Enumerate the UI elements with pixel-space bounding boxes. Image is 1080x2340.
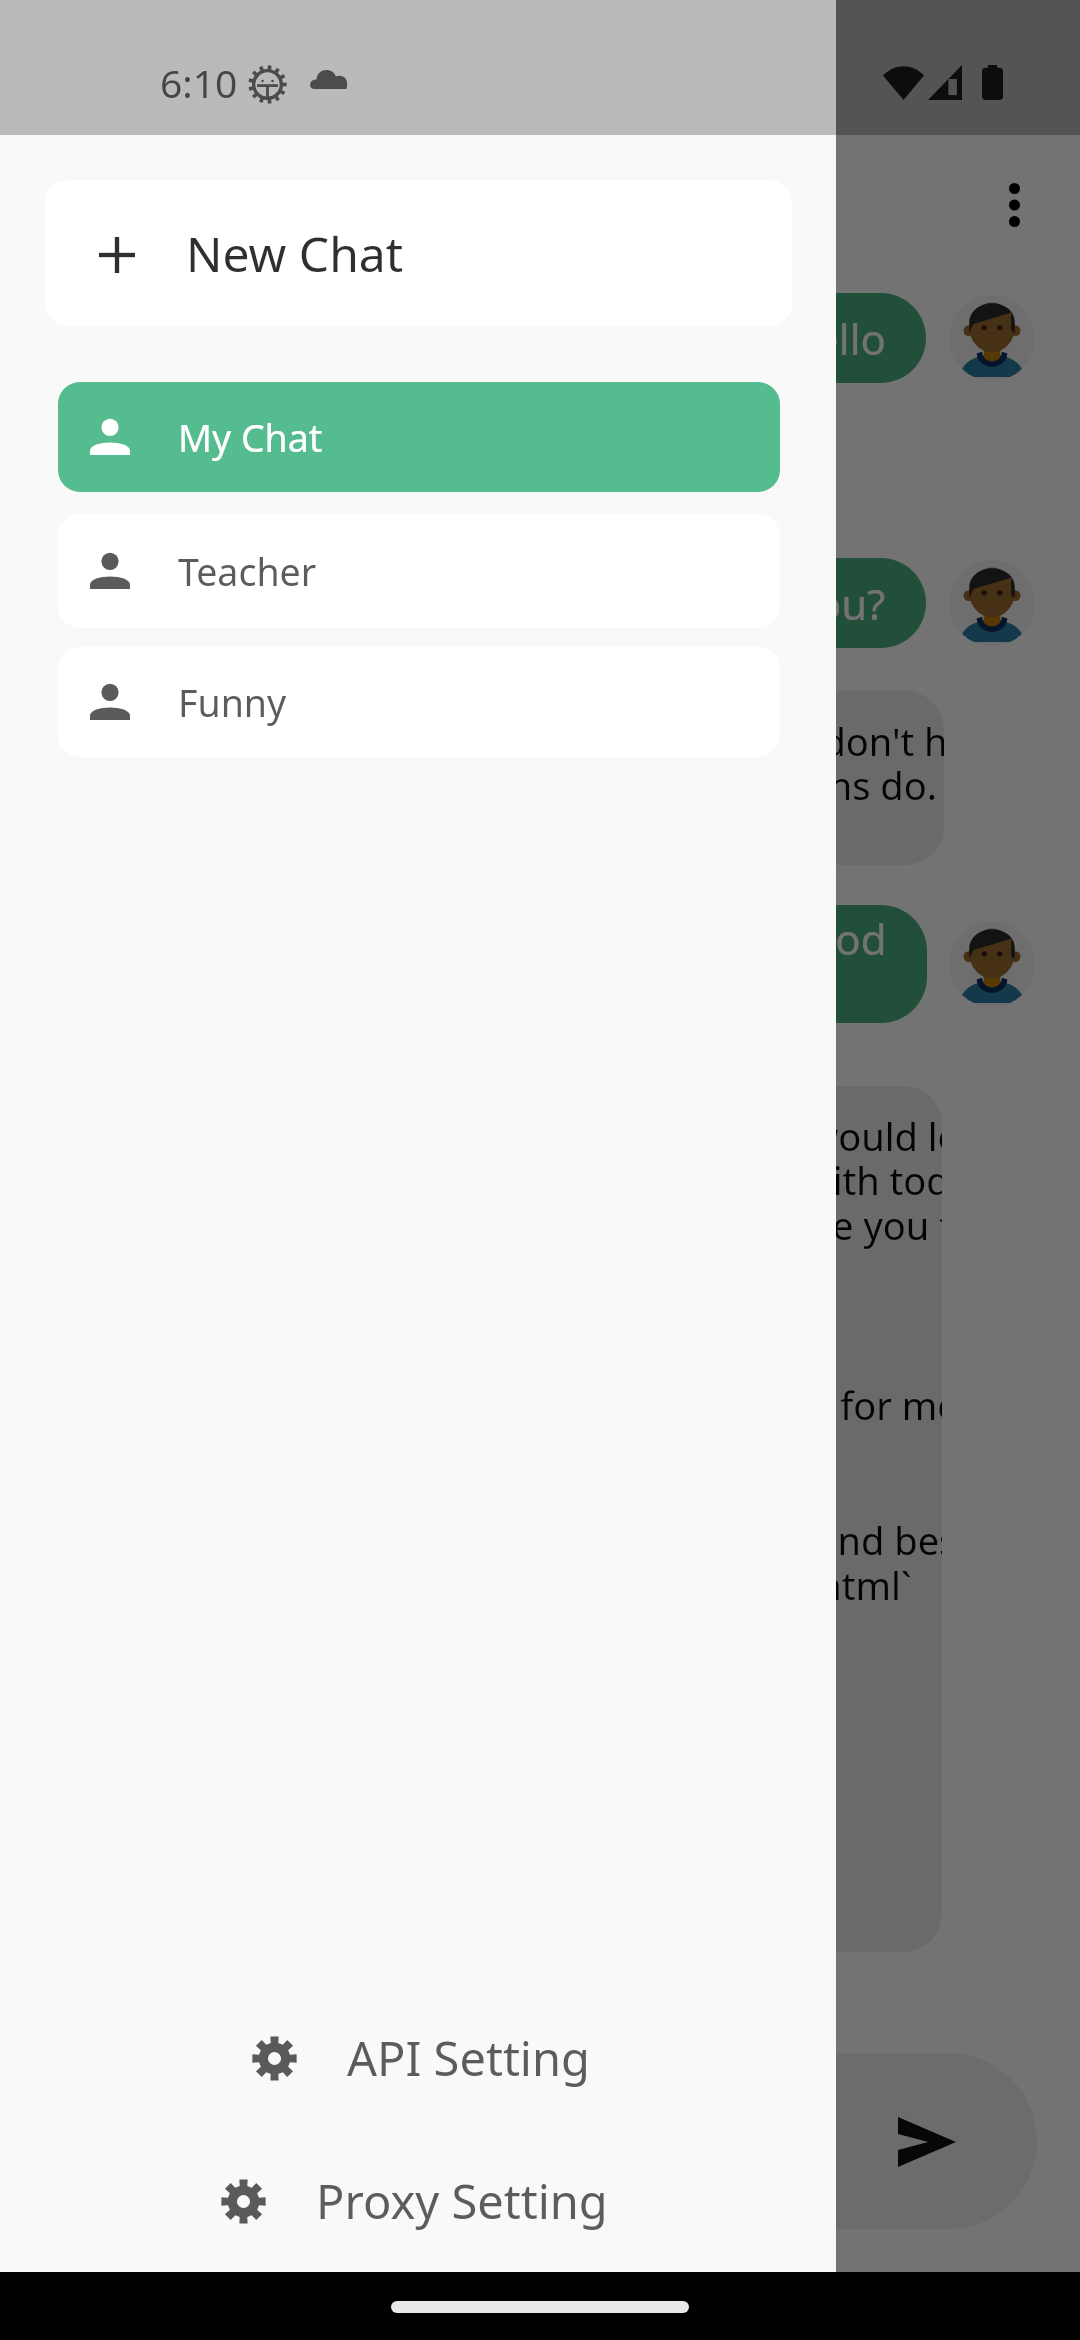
staticText: Funny [178, 677, 287, 728]
staticText: That's good to hear! [656, 910, 887, 1018]
button[interactable]: Teacher [58, 514, 780, 628]
button[interactable]: Funny [58, 647, 780, 757]
staticText: Proxy Setting [316, 2169, 608, 2233]
staticText: I am just a computer program, so I don't… [192, 715, 944, 856]
staticText: New Chat [186, 221, 404, 286]
button[interactable]: API Setting [252, 2018, 590, 2098]
staticText: 6:10 [160, 56, 238, 109]
staticText: My Chat [178, 412, 323, 463]
staticText: Teacher [178, 546, 317, 597]
button[interactable]: My Chat [58, 382, 780, 492]
staticText: How are you? [620, 575, 886, 632]
staticText: Hello [784, 310, 886, 367]
button[interactable]: Proxy Setting [221, 2161, 608, 2241]
button[interactable]: Send [361, 2053, 1037, 2229]
staticText: API Setting [347, 2026, 590, 2090]
staticText: Sure! Here are a few more things I would… [190, 1110, 942, 1836]
button[interactable]: More options [969, 160, 1059, 250]
button[interactable]: New Chat [45, 180, 792, 326]
